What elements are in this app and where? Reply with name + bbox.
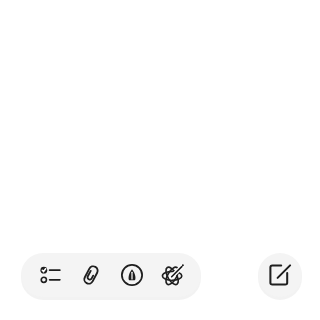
button[interactable]: Research [152,253,193,297]
button[interactable]: Styles [111,253,152,297]
button[interactable]: New note [258,253,302,297]
button[interactable]: Tasks [29,253,70,297]
button[interactable]: Attach file [70,253,111,297]
